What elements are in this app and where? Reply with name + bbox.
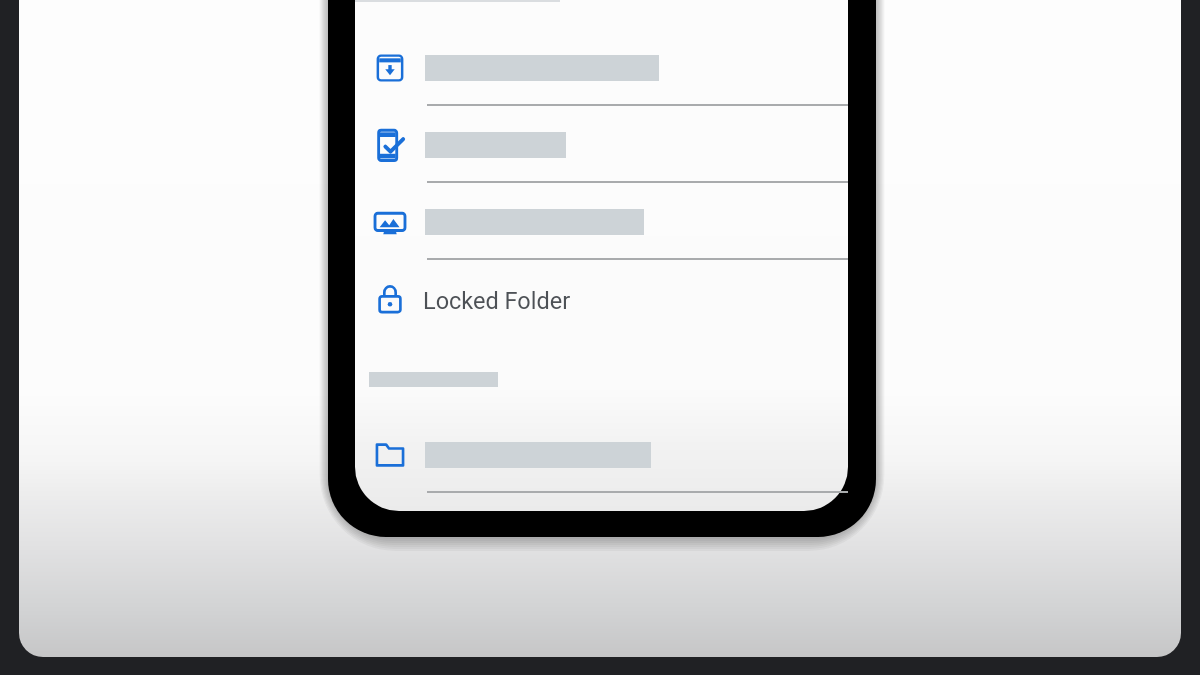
button[interactable]: Images (355, 183, 848, 260)
staticText: Locked Folder (423, 287, 571, 315)
button[interactable]: Device files (355, 106, 848, 183)
button[interactable]: Locked Folder (355, 260, 848, 337)
button[interactable] (355, 0, 848, 29)
button[interactable]: Downloads (355, 29, 848, 106)
button[interactable]: Folder (355, 416, 848, 493)
